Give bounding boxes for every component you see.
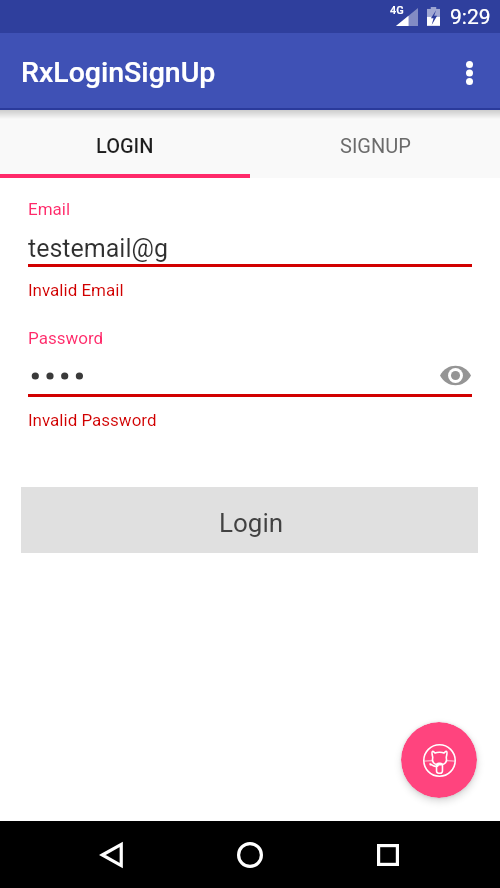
button[interactable]: Toggle password visibility (436, 358, 474, 392)
staticText: 4G (390, 4, 404, 17)
button[interactable]: More options (448, 52, 488, 92)
button[interactable]: Home (224, 829, 276, 881)
staticText: Invalid Email (28, 280, 124, 300)
button[interactable]: Back (86, 829, 138, 881)
staticText: LOGIN (96, 134, 154, 157)
button[interactable]: LOGIN (0, 110, 250, 178)
button[interactable]: SIGNUP (250, 110, 500, 178)
button[interactable]: Login (21, 487, 478, 553)
staticText: Login (219, 508, 284, 538)
staticText: Email (28, 199, 71, 219)
staticText: Invalid Password (28, 410, 157, 430)
staticText: SIGNUP (340, 134, 411, 157)
staticText: 9:29 (450, 5, 491, 30)
staticText: RxLoginSignUp (21, 56, 216, 89)
staticText: testemail@g (28, 234, 168, 263)
button[interactable]: Open GitHub repository (401, 722, 477, 798)
button[interactable]: Recents (362, 829, 414, 881)
staticText: Password (28, 328, 104, 348)
